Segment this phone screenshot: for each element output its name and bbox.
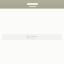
button[interactable] bbox=[2, 34, 62, 40]
button[interactable]: Title bbox=[27, 3, 38, 5]
